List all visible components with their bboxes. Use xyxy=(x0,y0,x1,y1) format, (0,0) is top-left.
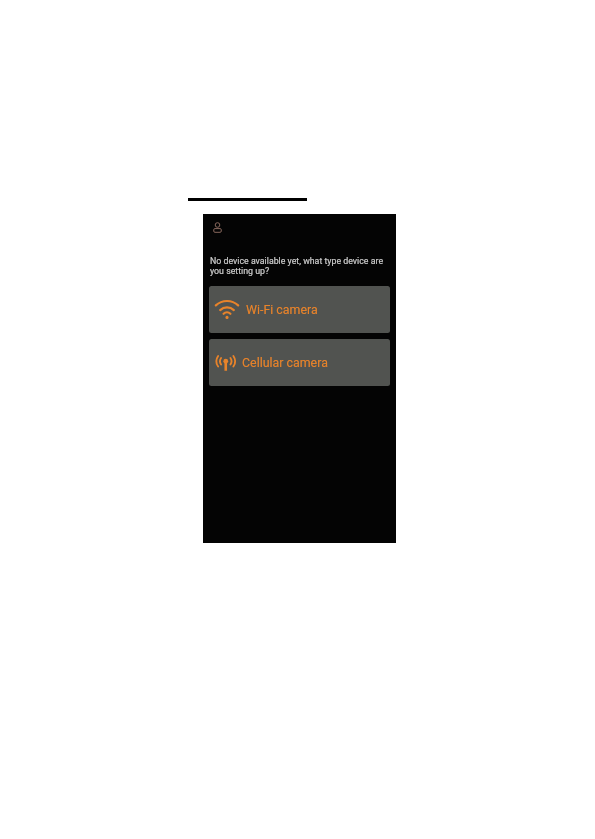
staticText: Wi-Fi camera xyxy=(246,302,318,317)
button[interactable]: Account xyxy=(213,222,222,233)
button[interactable]: Wi-Fi camera xyxy=(209,286,390,333)
staticText: Cellular camera xyxy=(242,355,328,370)
staticText: No device available yet, what type devic… xyxy=(210,256,391,277)
button[interactable]: Cellular camera xyxy=(209,339,390,386)
